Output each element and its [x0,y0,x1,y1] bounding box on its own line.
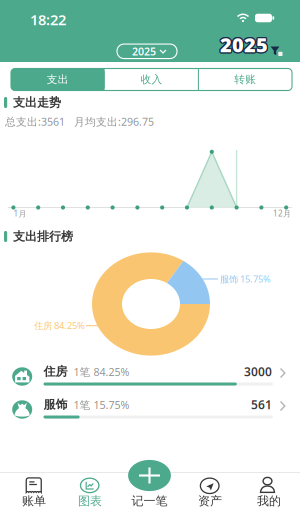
staticText: 2025 [219,32,267,59]
button[interactable]: 转账 [198,68,292,90]
staticText: 账单 [22,494,46,508]
staticText: 2025 [221,31,269,58]
staticText: 2025 [219,31,267,58]
staticText: 3000 [244,363,272,379]
button[interactable]: 图表 [62,466,118,510]
staticText: 561 [251,396,272,412]
staticText: 1笔 15.75% [73,398,129,412]
staticText: 2025 [221,30,269,57]
staticText: 记一笔 [131,494,167,508]
button[interactable]: 支出 [11,68,105,90]
button[interactable]: 筛选 [270,46,283,56]
staticText: 2025 [220,30,268,56]
staticText: 图表 [78,494,102,508]
staticText: 1月 [13,208,26,219]
staticText: 服饰 [43,397,67,412]
staticText: 支出 [47,73,69,86]
staticText: 2025 [132,44,156,58]
staticText: 住房 84.25% [34,319,85,332]
staticText: 我的 [257,494,281,508]
staticText: 1笔 84.25% [73,365,129,379]
staticText: 支出走势 [13,95,61,110]
staticText: 2025 [220,32,268,59]
button[interactable]: 账单 [6,466,62,510]
button[interactable]: 服饰 [0,392,300,425]
button[interactable]: 资产 [182,466,238,510]
button[interactable]: 收入 [105,68,198,90]
button[interactable]: 记一笔 [118,450,180,508]
staticText: 2025 [220,31,268,58]
staticText: 服饰 15.75% [220,273,271,285]
button[interactable]: 我的 [241,466,297,510]
staticText: 2025 [221,32,269,59]
staticText: 总支出:3561 月均支出:296.75 [5,114,154,129]
staticText: 收入 [140,73,162,86]
staticText: 住房 [43,364,67,379]
staticText: 12月 [273,208,291,219]
staticText: 18:22 [30,10,66,29]
staticText: 转账 [234,73,256,86]
staticText: 资产 [198,494,222,508]
button[interactable]: 住房 [0,359,300,392]
button[interactable]: 2025 [117,44,177,58]
staticText: 2025 [219,30,267,57]
staticText: 支出排行榜 [13,229,73,244]
